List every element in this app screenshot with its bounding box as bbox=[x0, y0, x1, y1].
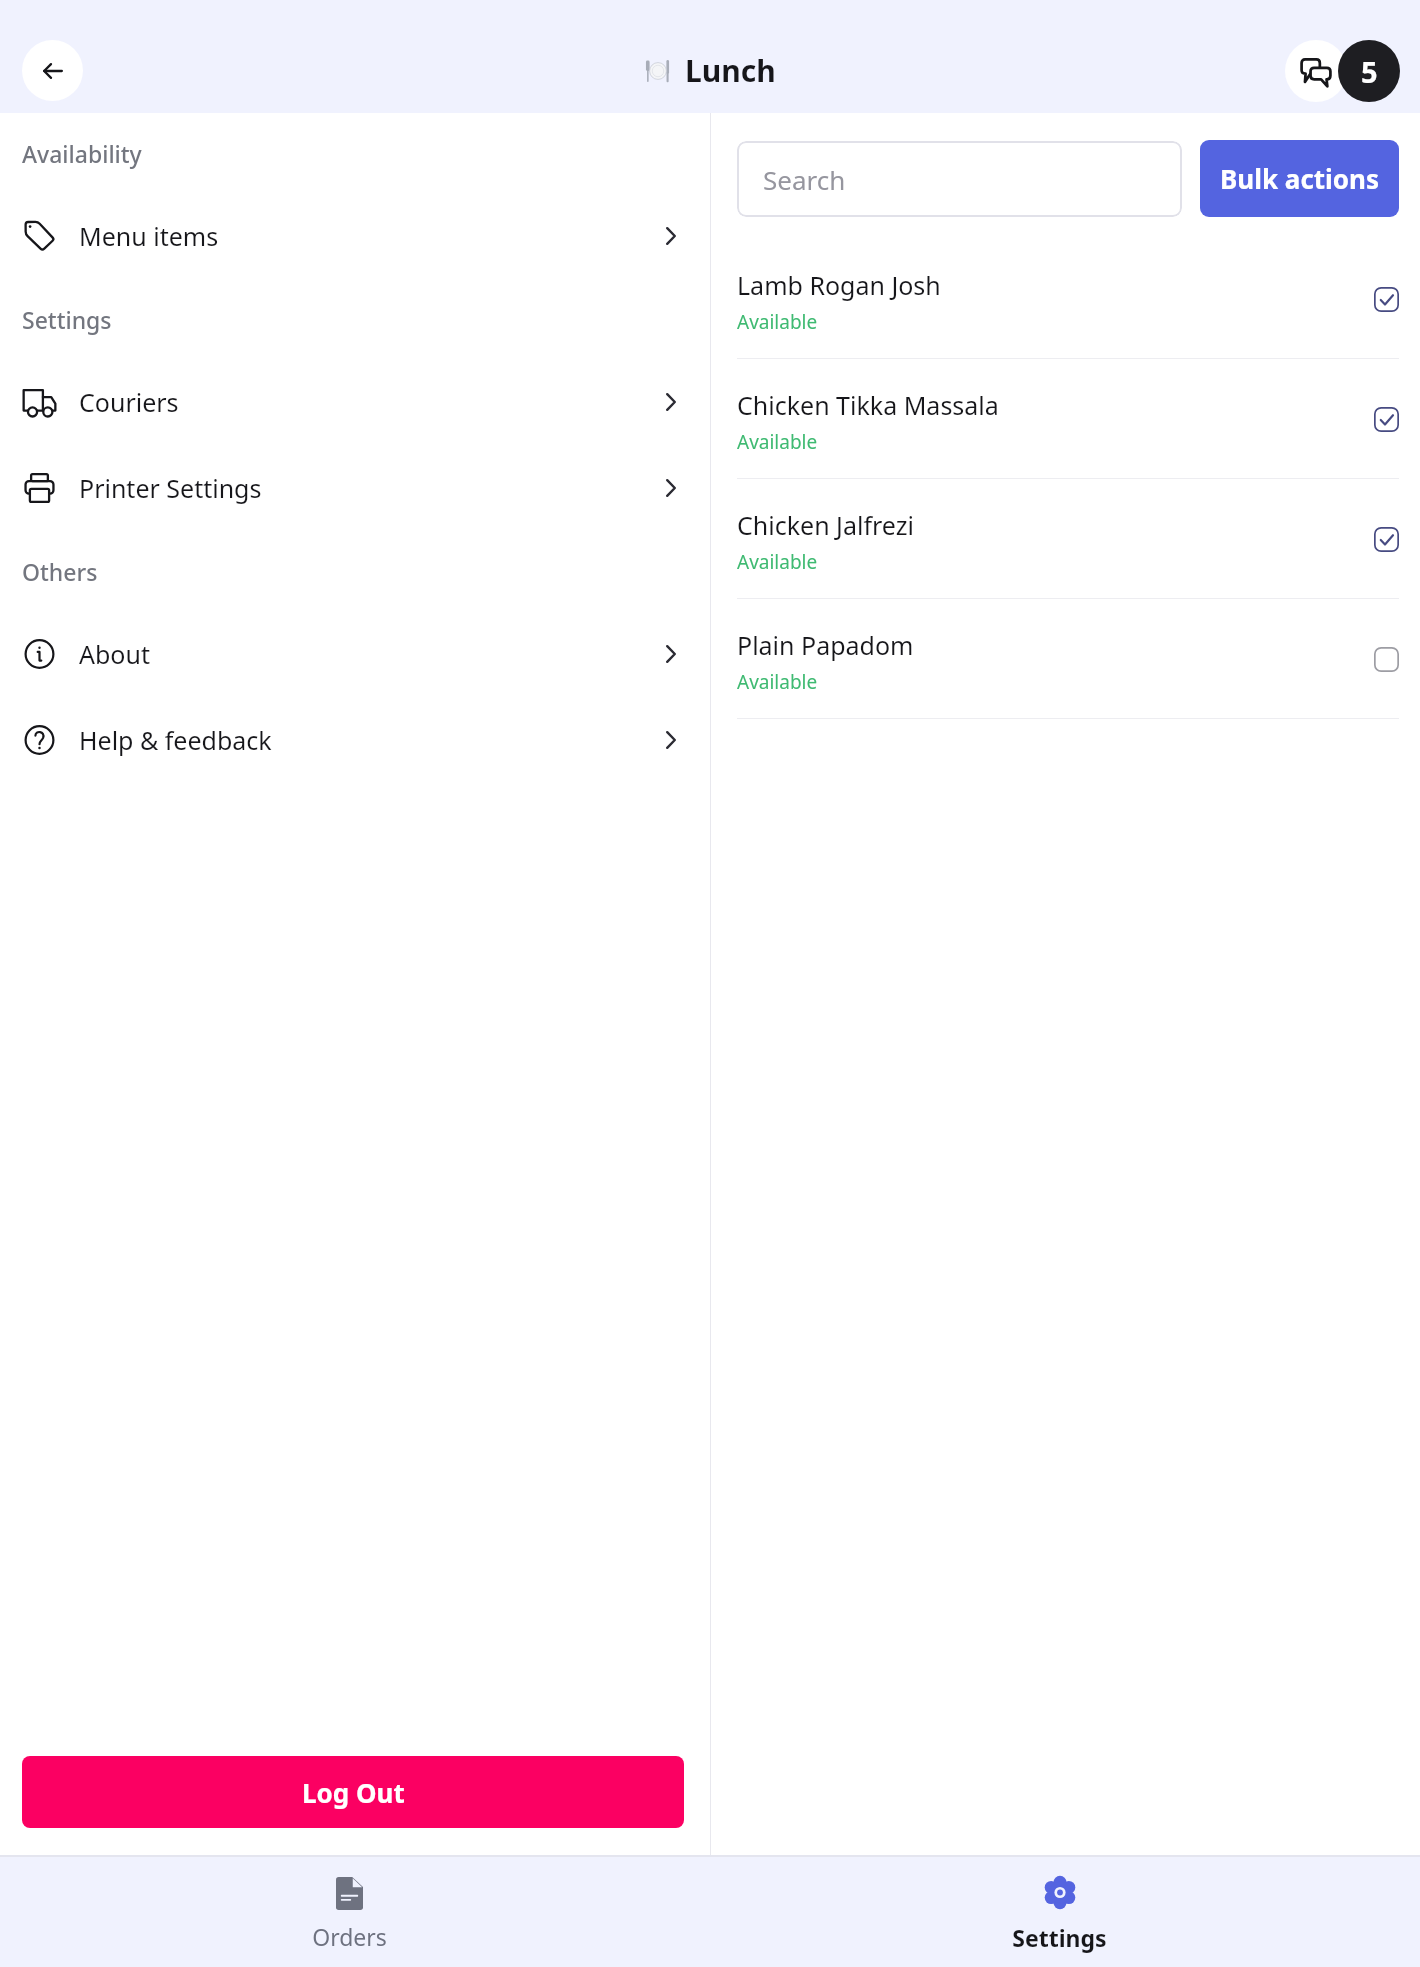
button[interactable]: 5 notifications bbox=[1338, 40, 1400, 102]
button[interactable]: Orders bbox=[0, 1862, 699, 1967]
button[interactable]: Chicken Jalfrezi bbox=[737, 479, 1399, 598]
staticText: Available bbox=[737, 669, 818, 695]
staticText: Orders bbox=[312, 1921, 387, 1952]
staticText: Lamb Rogan Josh bbox=[737, 268, 941, 302]
button[interactable]: Plain Papadom bbox=[737, 599, 1399, 718]
staticText: Available bbox=[737, 429, 818, 455]
button[interactable]: Available, checked bbox=[1374, 407, 1399, 432]
staticText: Others bbox=[22, 556, 98, 587]
button[interactable]: Settings bbox=[699, 1862, 1420, 1967]
staticText: Settings bbox=[1012, 1922, 1107, 1953]
staticText: Printer Settings bbox=[79, 471, 262, 505]
staticText: Lunch bbox=[685, 50, 776, 91]
staticText: Menu items bbox=[79, 219, 219, 253]
staticText: Bulk actions bbox=[1220, 161, 1380, 196]
button[interactable]: Search bbox=[737, 141, 1182, 217]
staticText: About bbox=[79, 637, 150, 671]
staticText: Available bbox=[737, 309, 818, 335]
staticText: Available bbox=[737, 549, 818, 575]
button[interactable]: Help & feedback bbox=[0, 697, 710, 783]
button[interactable]: Back bbox=[22, 40, 83, 101]
button[interactable]: Log Out bbox=[22, 1756, 684, 1828]
button[interactable]: About bbox=[0, 611, 710, 697]
button[interactable]: Printer Settings bbox=[0, 445, 710, 531]
button[interactable]: Lamb Rogan Josh bbox=[737, 239, 1399, 358]
staticText: Chicken Tikka Massala bbox=[737, 388, 999, 422]
button[interactable]: Available, checked bbox=[1374, 527, 1399, 552]
staticText: Search bbox=[763, 162, 846, 197]
button[interactable]: Couriers bbox=[0, 359, 710, 445]
staticText: Help & feedback bbox=[79, 723, 272, 757]
button[interactable]: Menu items bbox=[0, 193, 710, 279]
button[interactable]: Bulk actions bbox=[1200, 140, 1399, 217]
staticText: Plain Papadom bbox=[737, 628, 914, 662]
button[interactable]: Messages bbox=[1285, 40, 1347, 102]
staticText: Couriers bbox=[79, 385, 179, 419]
staticText: Availability bbox=[22, 138, 142, 169]
staticText: Chicken Jalfrezi bbox=[737, 508, 914, 542]
button[interactable]: Chicken Tikka Massala bbox=[737, 359, 1399, 478]
button[interactable]: Available, unchecked bbox=[1374, 647, 1399, 672]
button[interactable]: Available, checked bbox=[1374, 287, 1399, 312]
staticText: Log Out bbox=[302, 1775, 405, 1810]
staticText: 5 bbox=[1361, 52, 1378, 91]
staticText: Settings bbox=[22, 304, 112, 335]
